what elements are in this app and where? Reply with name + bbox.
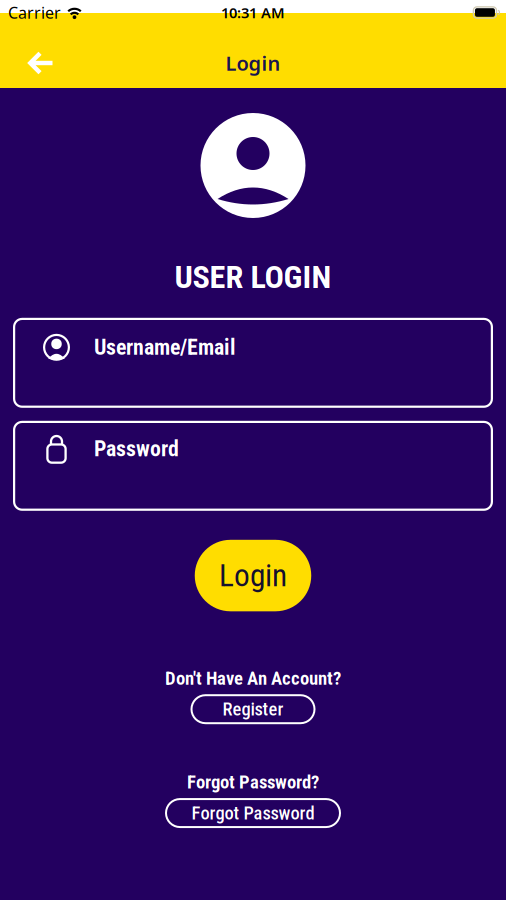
button[interactable]: Username/Email <box>13 318 493 408</box>
button[interactable]: Login <box>195 540 311 611</box>
staticText: USER LOGIN <box>174 258 331 296</box>
button[interactable]: Forgot Password <box>165 798 341 828</box>
staticText: 10:31 AM <box>221 3 285 22</box>
staticText: Don't Have An Account? <box>165 667 341 689</box>
staticText: Register <box>222 698 283 720</box>
staticText: Carrier <box>8 2 61 23</box>
staticText: Forgot Password? <box>187 771 319 793</box>
staticText: Forgot Password <box>191 802 314 824</box>
staticText: Password <box>94 436 179 462</box>
staticText: Login <box>225 50 280 76</box>
button[interactable]: Password <box>13 421 493 511</box>
staticText: Username/Email <box>94 334 236 360</box>
button[interactable]: Register <box>190 694 315 724</box>
button[interactable]: Back <box>0 51 53 74</box>
staticText: Login <box>219 557 287 594</box>
